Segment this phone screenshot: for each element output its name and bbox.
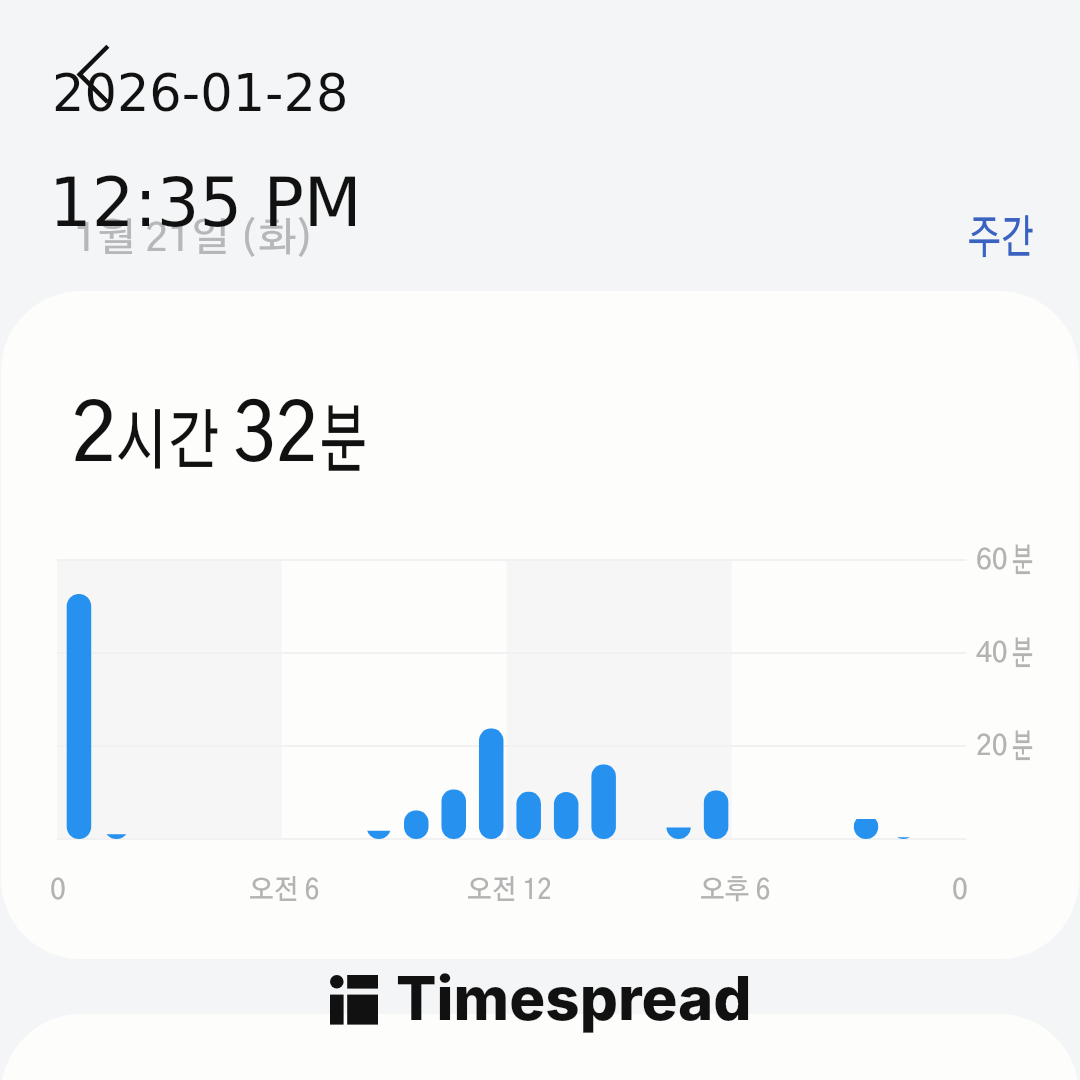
staticText: 2026-01-28 <box>52 64 349 123</box>
staticText: 분 <box>320 405 367 481</box>
staticText: 주간 <box>968 216 1035 262</box>
staticText: 분 <box>1012 731 1034 765</box>
staticText: 0 <box>50 877 66 905</box>
staticText: 1월 21일 (화) <box>74 219 315 259</box>
staticText: 오후 6 <box>700 877 771 905</box>
button[interactable]: Back <box>58 36 128 106</box>
staticText: 분 <box>1012 638 1034 672</box>
staticText: 60 <box>976 547 1008 575</box>
staticText: 40 <box>976 640 1008 668</box>
staticText: 분 <box>1012 545 1034 579</box>
staticText: 오전 12 <box>467 877 552 905</box>
staticText: 2 <box>71 396 117 477</box>
staticText: 0 <box>952 877 968 905</box>
staticText: 12:35 PM <box>49 164 362 242</box>
staticText: Timespread <box>396 962 752 1035</box>
button[interactable]: 주간 <box>950 196 1060 262</box>
staticText: 시간 <box>116 410 220 476</box>
staticText: 오전 6 <box>249 877 320 905</box>
staticText: 32 <box>233 396 319 477</box>
staticText: 20 <box>976 733 1008 761</box>
